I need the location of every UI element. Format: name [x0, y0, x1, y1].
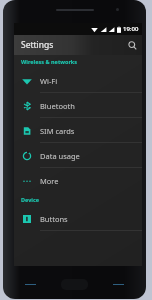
staticText: Device	[21, 196, 40, 203]
button[interactable]: Bluetooth	[14, 93, 142, 118]
button[interactable]: Buttons	[14, 206, 142, 231]
button[interactable]: Search	[122, 35, 142, 55]
staticText: Bluetooth	[40, 101, 75, 111]
staticText: Buttons	[40, 214, 68, 224]
button[interactable]: Wi-Fi	[14, 68, 142, 93]
staticText: SIM cards	[40, 126, 75, 136]
staticText: Wi-Fi	[40, 76, 58, 86]
staticText: Data usage	[40, 151, 80, 161]
staticText: 19:00	[123, 25, 139, 33]
staticText: Wireless & networks	[21, 58, 78, 65]
staticText: Settings	[21, 39, 54, 51]
button[interactable]: SIM cards	[14, 118, 142, 143]
button[interactable]: Data usage	[14, 143, 142, 168]
button[interactable]: More	[14, 168, 142, 193]
staticText: More	[40, 176, 59, 186]
